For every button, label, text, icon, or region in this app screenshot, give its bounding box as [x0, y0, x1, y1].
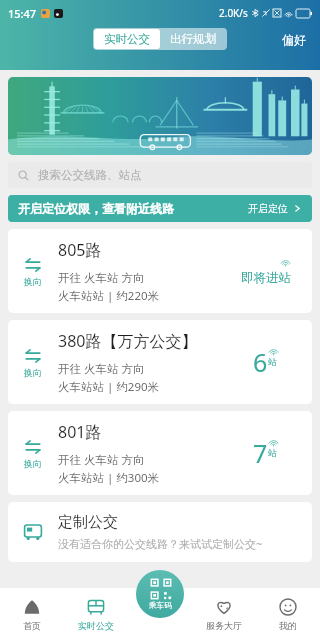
staticText: 出行规划 [170, 32, 216, 46]
button[interactable]: 换向 [8, 229, 312, 313]
staticText: 6 [253, 345, 268, 379]
staticText: 火车站站 | 约220米 [58, 288, 160, 304]
staticText: 开往 火车站 方向 [58, 270, 145, 286]
staticText: 偏好 [282, 32, 306, 47]
staticText: 换向 [24, 367, 42, 378]
staticText: 换向 [24, 458, 42, 469]
button[interactable]: 首页 [0, 588, 64, 640]
staticText: 火车站站 | 约300米 [58, 470, 160, 486]
button[interactable]: 实时公交 [94, 29, 160, 49]
staticText: 7 [253, 436, 268, 470]
button[interactable]: 换向 [8, 411, 312, 495]
button[interactable]: 搜索公交线路、站点 [8, 162, 312, 188]
button[interactable]: 偏好 [278, 28, 310, 51]
button[interactable]: 定制公交 [8, 502, 312, 562]
staticText: 换向 [24, 276, 42, 287]
staticText: 801路 [58, 421, 102, 443]
staticText: 乘车码 [149, 601, 172, 610]
staticText: 服务大厅 [206, 620, 242, 631]
staticText: 开启定位权限，查看附近线路 [18, 201, 174, 216]
staticText: 开往 火车站 方向 [58, 452, 145, 468]
staticText: 实时公交 [104, 32, 150, 46]
staticText: 搜索公交线路、站点 [38, 168, 142, 182]
button[interactable]: 换向 [8, 438, 58, 469]
staticText: 即将进站 [241, 270, 291, 286]
staticText: 2.0K/s [219, 6, 248, 20]
staticText: 火车站站 | 约290米 [58, 379, 160, 395]
button[interactable]: 开启定位权限，查看附近线路 [8, 195, 312, 222]
button[interactable]: 我的 [256, 588, 320, 640]
staticText: 我的 [279, 620, 297, 631]
button[interactable]: 乘车码 [136, 570, 184, 618]
staticText: 15:47 [8, 6, 37, 21]
staticText: 站 [268, 356, 277, 367]
button[interactable]: 换向 [8, 347, 58, 378]
staticText: 开往 火车站 方向 [58, 361, 145, 377]
button[interactable]: 出行规划 [160, 29, 226, 49]
button[interactable]: 服务大厅 [192, 588, 256, 640]
button[interactable]: 换向 [8, 256, 58, 287]
staticText: 定制公交 [58, 513, 118, 532]
staticText: 首页 [23, 620, 41, 631]
staticText: 没有适合你的公交线路？来试试定制公交~ [58, 536, 263, 551]
staticText: 开启定位 [248, 202, 288, 215]
staticText: 805路 [58, 239, 102, 261]
staticText: 380路【万方公交】 [58, 330, 198, 352]
button[interactable]: 实时公交 [64, 588, 128, 640]
staticText: 实时公交 [78, 620, 114, 631]
staticText: 站 [268, 447, 277, 458]
button[interactable]: 换向 [8, 320, 312, 404]
